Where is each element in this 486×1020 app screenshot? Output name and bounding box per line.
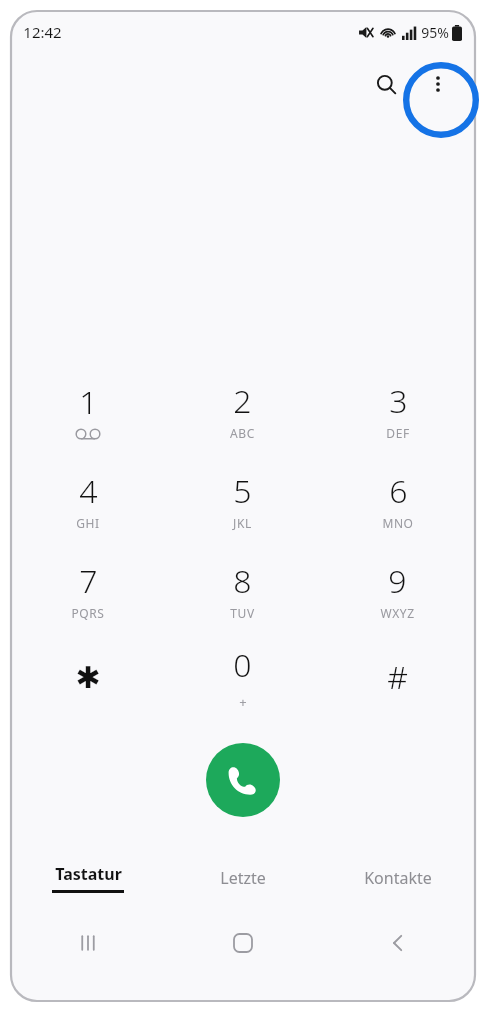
- button[interactable]: 4: [11, 455, 165, 545]
- staticText: 6: [389, 469, 408, 513]
- staticText: GHI: [76, 515, 100, 531]
- staticText: Tastatur: [55, 863, 122, 885]
- staticText: 1: [79, 380, 98, 424]
- button[interactable]: 2: [165, 365, 320, 455]
- staticText: 9: [388, 559, 407, 603]
- button[interactable]: Home: [165, 917, 320, 969]
- staticText: 7: [79, 559, 98, 603]
- staticText: WXYZ: [380, 605, 415, 621]
- button[interactable]: Letzte: [165, 855, 320, 901]
- staticText: 2: [233, 379, 252, 423]
- staticText: TUV: [230, 605, 255, 621]
- button[interactable]: #: [320, 635, 475, 719]
- button[interactable]: 5: [165, 455, 320, 545]
- staticText: 0: [233, 643, 252, 687]
- button[interactable]: Back: [320, 917, 475, 969]
- button[interactable]: More options: [415, 61, 461, 107]
- staticText: 3: [389, 379, 408, 423]
- button[interactable]: 8: [165, 545, 320, 635]
- button[interactable]: Tastatur: [11, 855, 165, 901]
- button[interactable]: ✱: [11, 635, 165, 719]
- staticText: PQRS: [71, 605, 105, 621]
- staticText: 95%: [421, 23, 449, 42]
- button[interactable]: 3: [320, 365, 475, 455]
- button[interactable]: Search: [363, 61, 409, 107]
- staticText: 8: [233, 559, 252, 603]
- staticText: 12:42: [23, 22, 62, 42]
- staticText: ABC: [230, 425, 255, 441]
- staticText: MNO: [382, 515, 414, 531]
- staticText: #: [387, 655, 408, 699]
- staticText: 4: [79, 469, 98, 513]
- button[interactable]: Kontakte: [320, 855, 475, 901]
- staticText: DEF: [386, 425, 410, 441]
- button[interactable]: Recent apps: [11, 917, 165, 969]
- staticText: 5: [233, 469, 252, 513]
- button[interactable]: 1: [11, 365, 165, 455]
- button[interactable]: 6: [320, 455, 475, 545]
- staticText: JKL: [233, 515, 252, 531]
- staticText: +: [239, 693, 247, 711]
- staticText: Letzte: [220, 867, 266, 889]
- button[interactable]: 7: [11, 545, 165, 635]
- button[interactable]: Call: [206, 743, 280, 817]
- staticText: ✱: [75, 660, 101, 695]
- button[interactable]: 0: [165, 635, 320, 719]
- button[interactable]: 9: [320, 545, 475, 635]
- staticText: Kontakte: [364, 867, 432, 889]
